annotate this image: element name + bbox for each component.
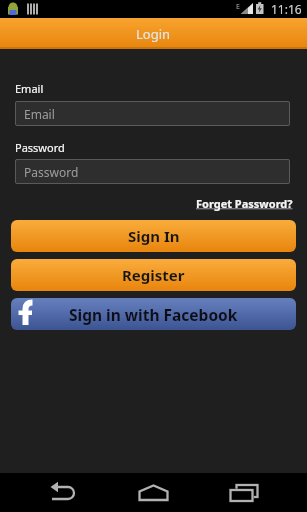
button[interactable]: Forget Password? xyxy=(196,196,293,211)
staticText: E xyxy=(236,2,240,12)
staticText: Sign in with Facebook xyxy=(69,304,238,325)
staticText: Register xyxy=(122,265,185,285)
staticText: Email xyxy=(15,81,44,96)
staticText: Login xyxy=(136,25,171,43)
staticText: Password xyxy=(24,164,79,180)
button[interactable]: Register xyxy=(11,259,296,291)
button[interactable] xyxy=(109,473,199,512)
button[interactable]: Sign In xyxy=(11,220,296,252)
button[interactable] xyxy=(19,473,109,512)
staticText: 11:16 xyxy=(271,1,302,17)
button[interactable]: Password xyxy=(15,159,290,184)
button[interactable]: Sign in with Facebook xyxy=(11,298,296,330)
button[interactable] xyxy=(199,473,289,512)
staticText: Sign In xyxy=(128,226,180,246)
staticText: Email xyxy=(24,106,55,122)
staticText: Password xyxy=(15,140,65,155)
button[interactable]: Email xyxy=(15,101,290,126)
